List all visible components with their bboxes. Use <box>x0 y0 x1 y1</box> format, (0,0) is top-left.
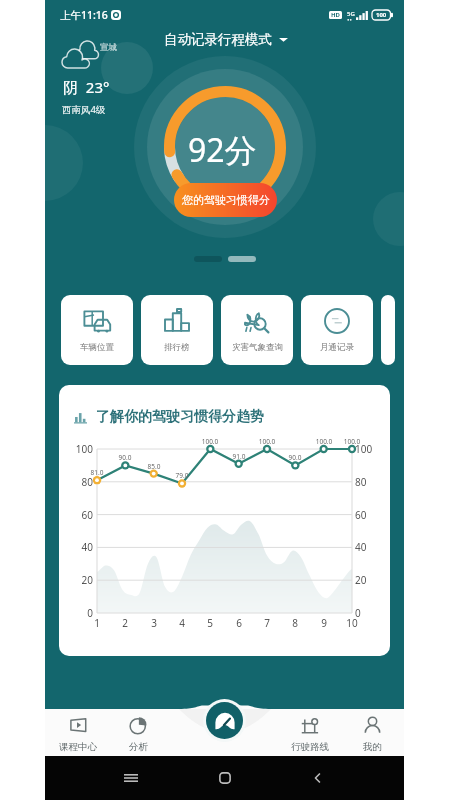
staticText: 100.0 <box>312 437 336 446</box>
staticText: 100.0 <box>198 437 222 446</box>
staticText: 西南风4级 <box>62 103 106 116</box>
staticText: 80 <box>355 475 367 489</box>
staticText: 2 <box>115 616 135 630</box>
staticText: 100 <box>355 442 373 456</box>
staticText: 宣城 <box>100 42 117 53</box>
staticText: 100 <box>376 11 387 19</box>
staticText: 80 <box>65 475 93 489</box>
staticText: 9 <box>314 616 334 630</box>
staticText: 100 <box>65 442 93 456</box>
staticText: HD <box>331 11 340 19</box>
button[interactable]: 课程中心 <box>50 710 106 756</box>
staticText: 分析 <box>129 741 148 753</box>
staticText: 5G <box>347 10 355 18</box>
staticText: 6 <box>229 616 249 630</box>
staticText: 3 <box>144 616 164 630</box>
button[interactable]: 我的 <box>344 710 400 756</box>
staticText: 5 <box>200 616 220 630</box>
staticText: 车辆位置 <box>80 342 114 353</box>
staticText: 60 <box>65 508 93 522</box>
staticText: 91.0 <box>227 452 251 461</box>
staticText: 79.0 <box>170 471 194 480</box>
staticText: 85.0 <box>142 462 166 471</box>
staticText: 您的驾驶习惯得分 <box>182 193 270 207</box>
staticText: 排行榜 <box>164 342 190 353</box>
staticText: 40 <box>65 540 93 554</box>
staticText: 60 <box>355 508 367 522</box>
staticText: 100.0 <box>340 437 364 446</box>
button[interactable]: 分析 <box>110 710 166 756</box>
staticText: 0 <box>355 606 361 620</box>
staticText: 了解你的驾驶习惯得分趋势 <box>96 408 264 426</box>
staticText: 7 <box>257 616 277 630</box>
staticText: 我的 <box>363 741 382 753</box>
staticText: 1 <box>87 616 107 630</box>
button[interactable]: 月通记录 <box>301 295 373 365</box>
staticText: 40 <box>355 540 367 554</box>
staticText: 月通记录 <box>320 342 354 353</box>
staticText: 4 <box>172 616 192 630</box>
staticText: 90.0 <box>113 453 137 462</box>
button[interactable]: 排行榜 <box>141 295 213 365</box>
button[interactable]: 开始行程 <box>206 702 243 739</box>
button[interactable]: 车辆位置 <box>61 295 133 365</box>
button[interactable]: 自动记录行程模式 <box>164 27 288 51</box>
staticText: 8 <box>285 616 305 630</box>
staticText: 92分 <box>188 128 257 172</box>
staticText: 上午11:16 <box>60 8 108 22</box>
staticText: 自动记录行程模式 <box>164 31 272 48</box>
staticText: 81.0 <box>85 468 109 477</box>
staticText: 90.0 <box>283 453 307 462</box>
button[interactable]: 您的驾驶习惯得分 <box>174 183 277 217</box>
staticText: 课程中心 <box>59 741 97 753</box>
button[interactable]: 灾害气象查询 <box>221 295 293 365</box>
staticText: 0 <box>65 606 93 620</box>
button[interactable]: 行驶路线 <box>282 710 338 756</box>
staticText: 阴 23° <box>63 77 110 97</box>
staticText: 20 <box>355 573 367 587</box>
staticText: 行驶路线 <box>291 741 329 753</box>
staticText: 10 <box>342 616 362 630</box>
staticText: 20 <box>65 573 93 587</box>
staticText: 100.0 <box>255 437 279 446</box>
staticText: 灾害气象查询 <box>232 342 283 353</box>
